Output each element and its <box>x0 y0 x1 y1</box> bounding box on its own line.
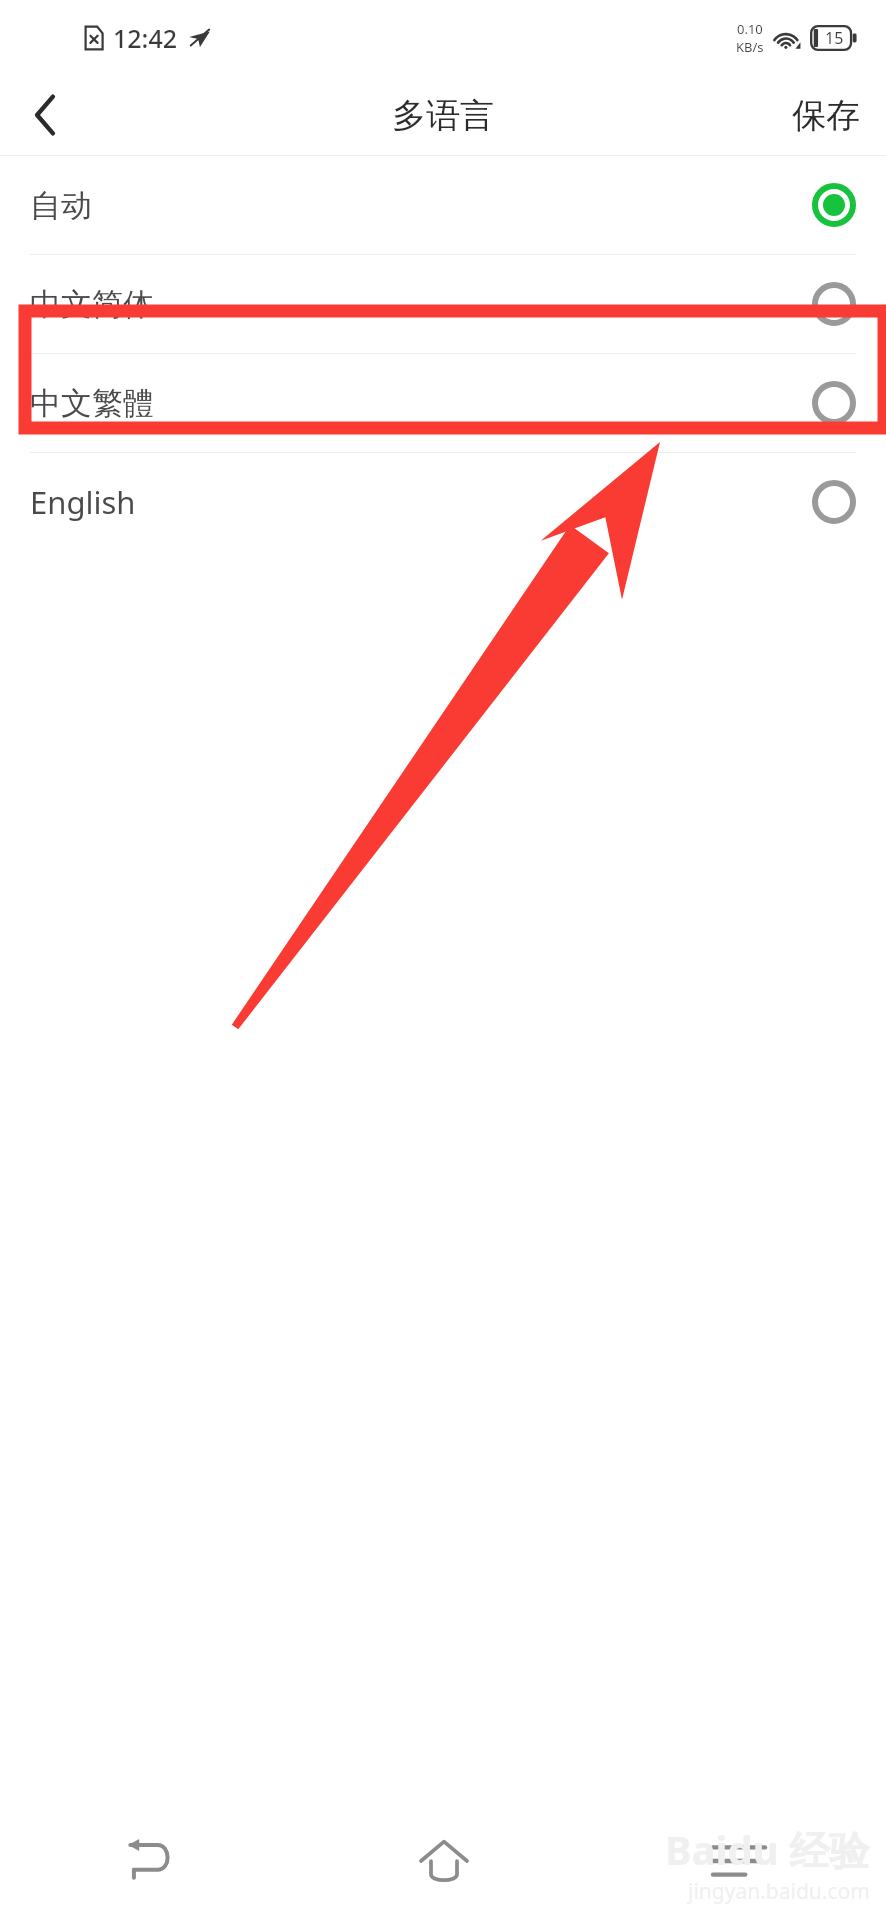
button[interactable]: Back <box>14 84 76 146</box>
staticText: 中文繁體 <box>30 384 154 423</box>
button[interactable]: Recent apps <box>591 1802 886 1920</box>
button[interactable]: 中文简体 <box>0 255 886 353</box>
staticText: 0.10 <box>737 20 763 38</box>
staticText: 中文简体 <box>30 285 154 324</box>
button[interactable]: 自动 <box>0 156 886 254</box>
staticText: 12:42 <box>113 21 178 55</box>
button[interactable]: Home <box>296 1802 591 1920</box>
staticText: English <box>30 481 136 523</box>
staticText: 自动 <box>30 186 92 225</box>
staticText: 保存 <box>792 94 860 137</box>
button[interactable]: Back <box>0 1802 296 1920</box>
staticText: 多语言 <box>392 94 494 137</box>
staticText: jingyan.baidu.com <box>688 1877 870 1906</box>
button[interactable]: 中文繁體 <box>0 354 886 452</box>
staticText: KB/s <box>736 38 764 56</box>
staticText: Baidu 经验 <box>665 1822 870 1877</box>
staticText: 15 <box>825 27 844 49</box>
button[interactable]: 保存 <box>766 84 886 147</box>
button[interactable]: English <box>0 453 886 551</box>
